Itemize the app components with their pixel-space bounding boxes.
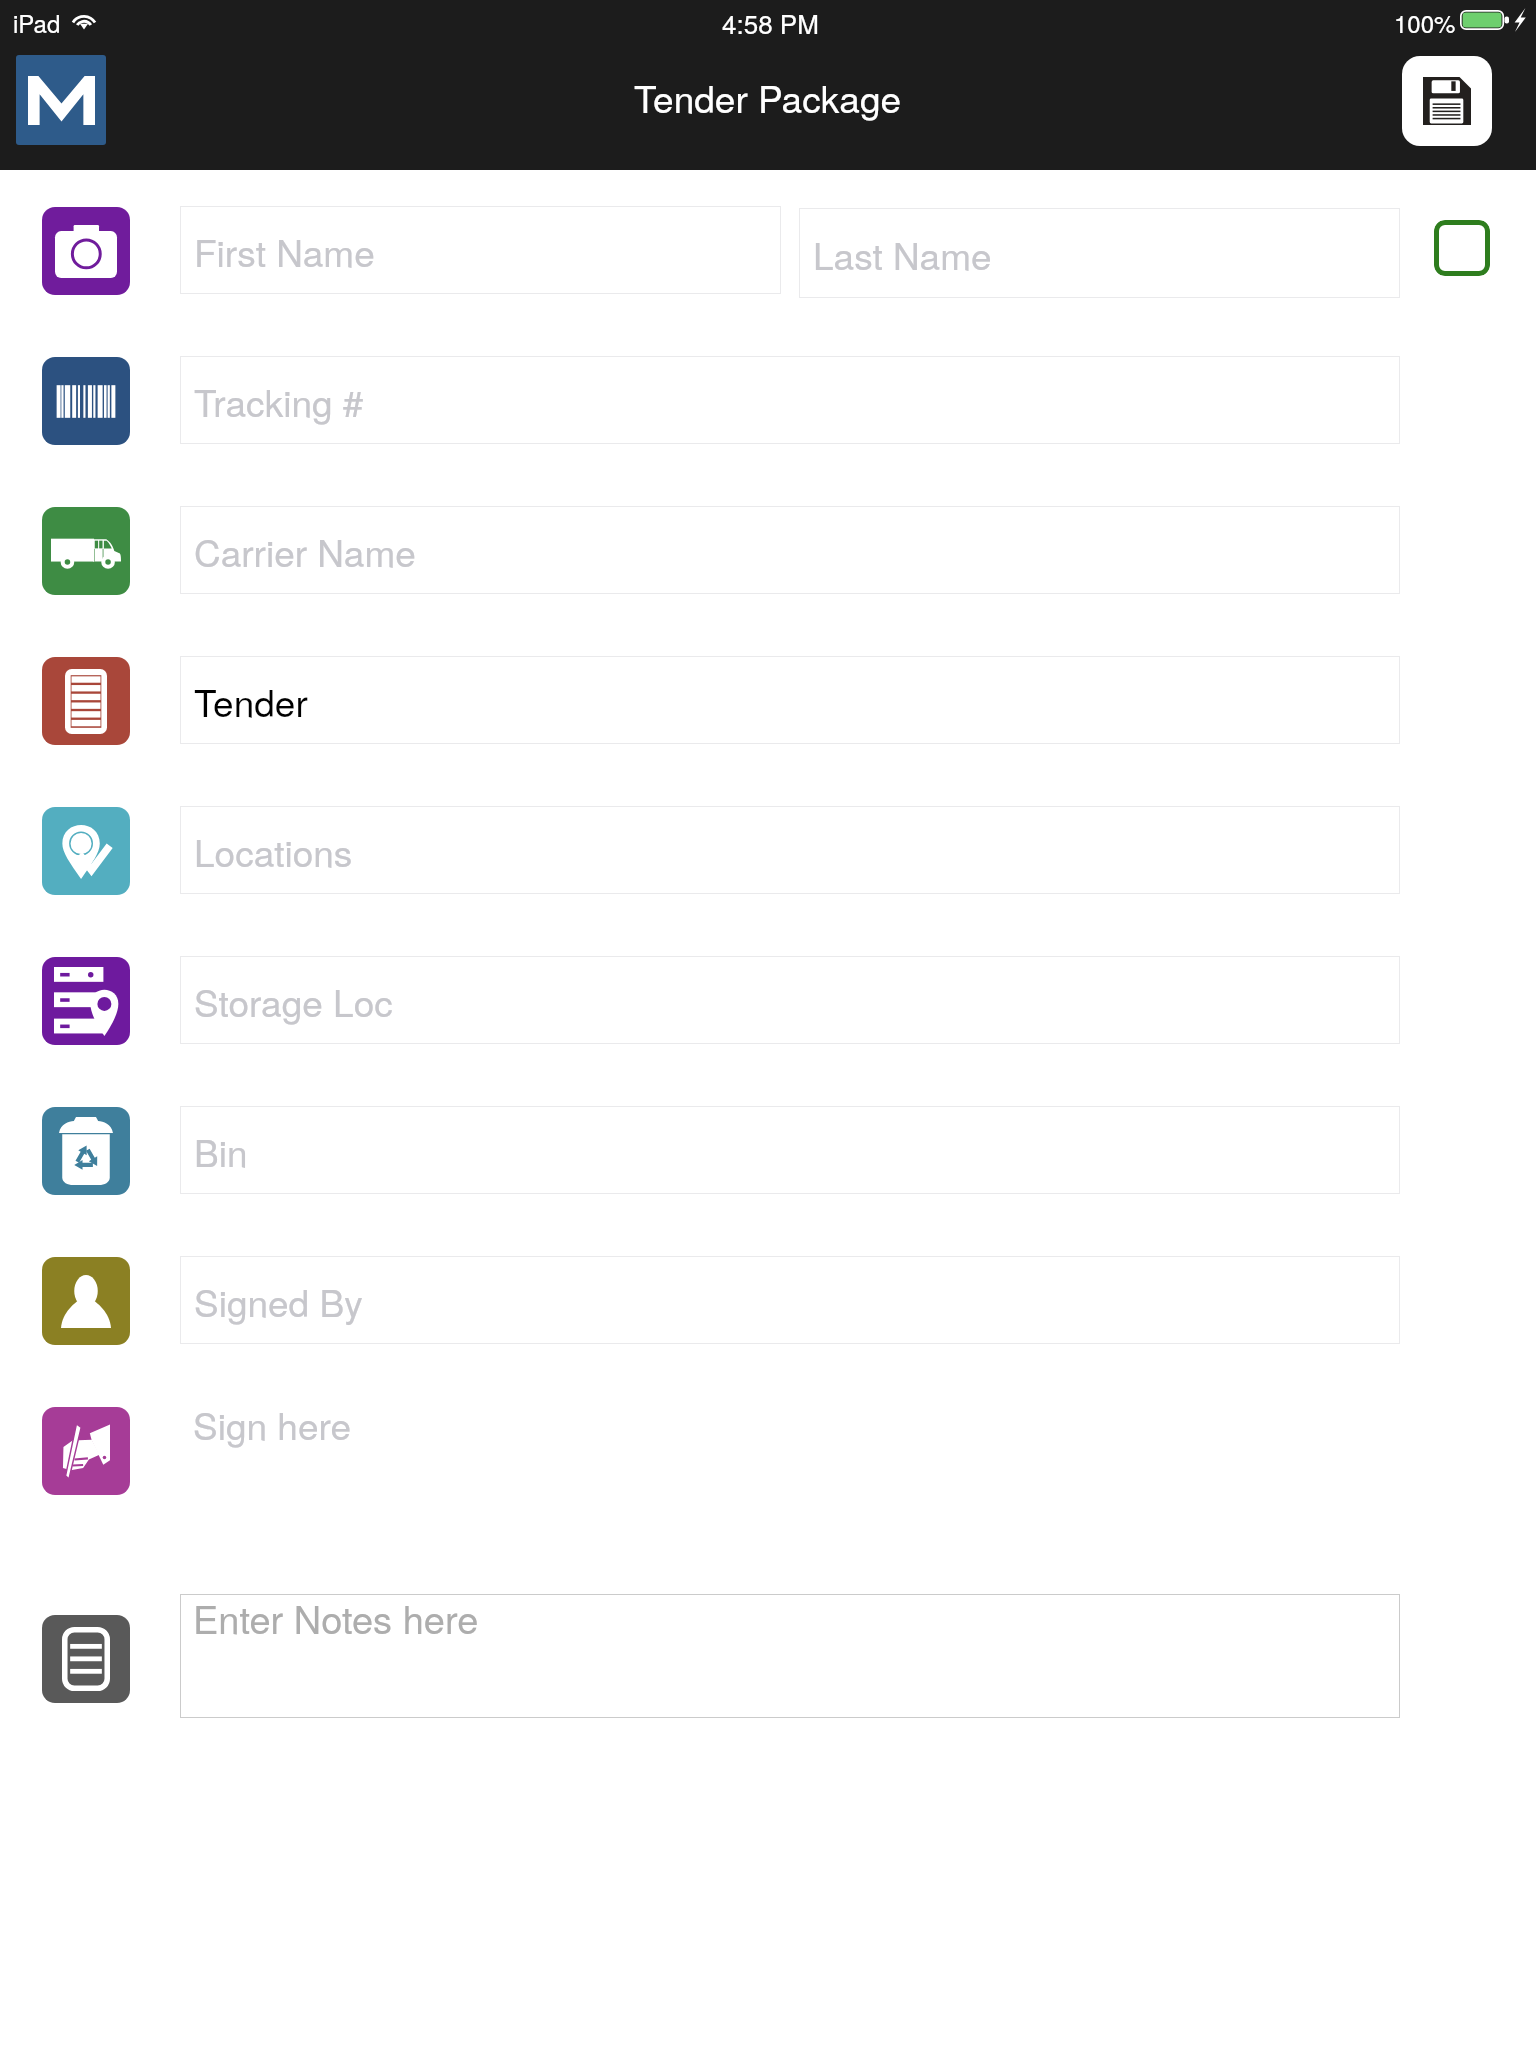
staticText: Signed By: [194, 1275, 363, 1328]
staticText: Tender: [194, 675, 308, 728]
button[interactable]: Select bin: [42, 1107, 130, 1195]
staticText: Storage Loc: [194, 975, 393, 1028]
button[interactable]: Locations: [180, 806, 1400, 894]
staticText: 100%: [1394, 5, 1456, 39]
staticText: Carrier Name: [194, 525, 416, 578]
button[interactable]: Signed by: [42, 1257, 130, 1345]
button[interactable]: Storage Loc: [180, 956, 1400, 1044]
staticText: Enter Notes here: [193, 1590, 479, 1644]
button[interactable]: Tender document: [42, 657, 130, 745]
button[interactable]: Select carrier: [42, 507, 130, 595]
button[interactable]: Notes: [42, 1615, 130, 1703]
button[interactable]: Enter Notes here: [180, 1594, 1400, 1718]
staticText: Last Name: [813, 228, 992, 281]
button[interactable]: Bin: [180, 1106, 1400, 1194]
button[interactable]: Take photo: [42, 207, 130, 295]
button[interactable]: Menu: [16, 55, 106, 145]
button[interactable]: Pick location: [42, 807, 130, 895]
button[interactable]: Signed By: [180, 1256, 1400, 1344]
staticText: Tracking #: [194, 375, 364, 428]
button[interactable]: Sign here: [180, 1406, 1400, 1494]
button[interactable]: Last Name: [799, 208, 1400, 298]
button[interactable]: Carrier Name: [180, 506, 1400, 594]
staticText: Tender Package: [634, 71, 902, 124]
button[interactable]: First Name: [180, 206, 781, 294]
button[interactable]: Storage location: [42, 957, 130, 1045]
staticText: Bin: [194, 1125, 248, 1178]
button[interactable]: Tender: [180, 656, 1400, 744]
staticText: Locations: [194, 825, 353, 878]
button[interactable]: Save: [1402, 56, 1492, 146]
button[interactable]: Capture signature: [42, 1407, 130, 1495]
button[interactable]: Scan barcode: [42, 357, 130, 445]
button[interactable]: Tracking #: [180, 356, 1400, 444]
staticText: iPad: [13, 5, 61, 39]
staticText: Sign here: [193, 1398, 351, 1451]
staticText: 4:58 PM: [722, 4, 819, 41]
staticText: First Name: [194, 225, 375, 278]
button[interactable]: Require signature: [1434, 220, 1490, 276]
